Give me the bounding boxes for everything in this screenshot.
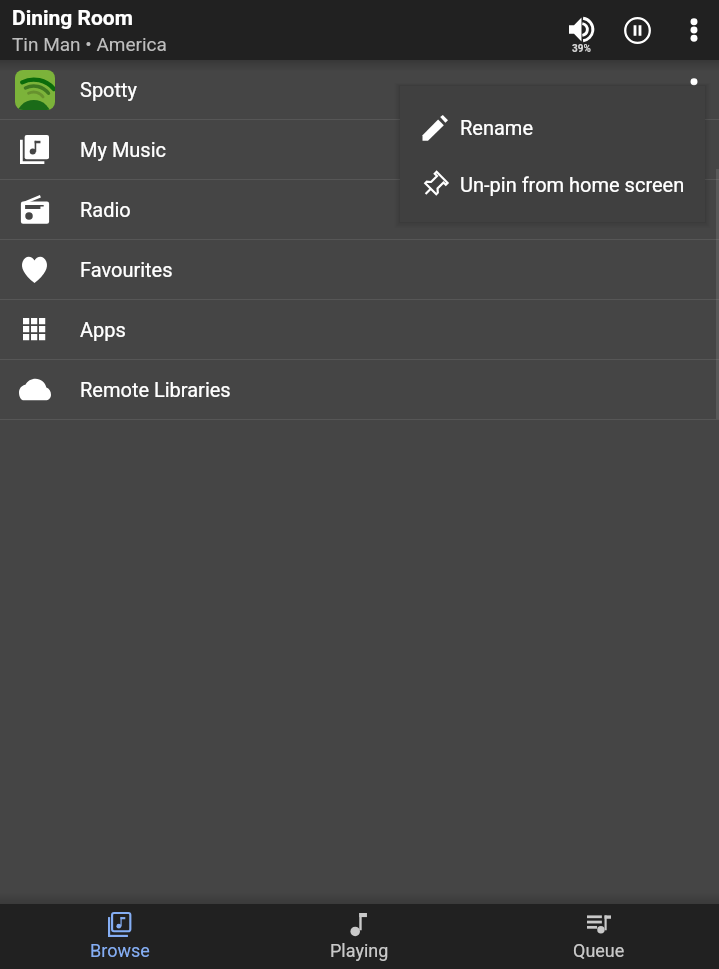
staticText: Spotty [80,78,138,101]
button[interactable]: Item options [669,60,719,119]
staticText: Apps [80,318,126,341]
button[interactable]: Radio [0,180,719,239]
staticText: My Music [80,138,167,161]
button[interactable]: Playing [239,904,479,969]
staticText: Playing [330,940,389,961]
button[interactable]: Volume [556,0,613,60]
staticText: Favourites [80,258,173,281]
staticText: Tin Man • America [12,33,167,55]
staticText: 39% [572,43,591,55]
staticText: Browse [90,940,150,961]
staticText: Dining Room [12,6,133,31]
staticText: Remote Libraries [80,378,231,401]
staticText: Radio [80,198,131,221]
button[interactable]: Un-pin from home screen [400,156,705,213]
button[interactable]: Queue [479,904,719,969]
staticText: Rename [460,116,533,139]
button[interactable]: Apps [0,300,719,359]
button[interactable]: More options [669,0,719,60]
button[interactable]: Favourites [0,240,719,299]
staticText: Un-pin from home screen [460,173,685,196]
button[interactable]: Rename [400,99,705,156]
button[interactable]: Browse [0,904,239,969]
button[interactable]: My Music [0,120,719,179]
button[interactable]: Pause [613,0,669,60]
staticText: Queue [573,940,625,961]
button[interactable]: Remote Libraries [0,360,719,419]
button[interactable]: Spotty [0,60,719,119]
